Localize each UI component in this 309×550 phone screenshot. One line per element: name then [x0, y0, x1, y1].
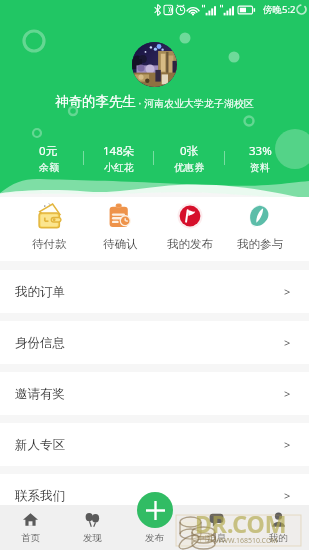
staticText: >	[284, 284, 291, 299]
staticText: 待付款	[32, 237, 67, 251]
button[interactable]: 我的	[247, 505, 309, 550]
staticText: 新人专区	[15, 437, 65, 453]
staticText: · 河南农业大学龙子湖校区	[136, 96, 254, 110]
staticText: >	[284, 335, 291, 350]
staticText: 优惠券	[174, 161, 204, 174]
button[interactable]: 邀请有奖	[0, 372, 309, 415]
staticText: 我的订单	[15, 284, 65, 300]
button[interactable]: 身份信息	[0, 321, 309, 364]
staticText: >	[284, 437, 291, 452]
staticText: >	[284, 386, 291, 401]
staticText: 神奇的李先生	[55, 93, 136, 110]
staticText: 资料	[250, 161, 270, 174]
button[interactable]: 0元	[14, 143, 83, 174]
button[interactable]: 发布	[137, 492, 173, 528]
button[interactable]: 消息	[185, 505, 247, 550]
staticText: 发布	[145, 532, 164, 544]
button[interactable]: 我的发布	[155, 197, 225, 258]
staticText: 我的参与	[237, 237, 283, 251]
staticText: 148朵	[103, 143, 135, 159]
button[interactable]: 148朵	[84, 143, 153, 174]
staticText: 首页	[21, 532, 40, 544]
button[interactable]: 我的参与	[225, 197, 295, 258]
staticText: 0元	[39, 143, 58, 159]
button[interactable]: 0张	[154, 143, 224, 174]
staticText: 消息	[207, 532, 226, 544]
staticText: 我的	[269, 532, 288, 544]
staticText: 33%	[249, 143, 272, 159]
staticText: 中国	[197, 533, 213, 543]
staticText: 发现	[83, 532, 102, 544]
button[interactable]: 待确认	[85, 197, 155, 258]
staticText: 傍晚5:2	[263, 3, 296, 16]
button[interactable]: 联系我们	[0, 474, 309, 517]
button[interactable]: 新人专区	[0, 423, 309, 466]
button[interactable]: 33%	[225, 143, 295, 174]
staticText: 小红花	[104, 161, 134, 174]
button[interactable]: 我的订单	[0, 270, 309, 313]
button[interactable]: 首页	[0, 505, 61, 550]
staticText: >	[284, 488, 291, 503]
staticText: 待确认	[103, 237, 138, 251]
staticText: 余额	[39, 161, 59, 174]
staticText: 我的发布	[167, 237, 213, 251]
staticText: 邀请有奖	[15, 386, 65, 402]
button[interactable]: 待付款	[14, 197, 85, 258]
staticText: 联系我们	[15, 488, 65, 504]
staticText: 身份信息	[15, 335, 65, 351]
button[interactable]: 发现	[61, 505, 123, 550]
staticText: 0张	[180, 143, 199, 159]
button[interactable]: 发布	[123, 505, 185, 550]
button[interactable]: 头像	[132, 42, 177, 87]
staticText: WWW.168510.COM	[215, 536, 278, 546]
staticText: DR.COM	[195, 508, 287, 539]
